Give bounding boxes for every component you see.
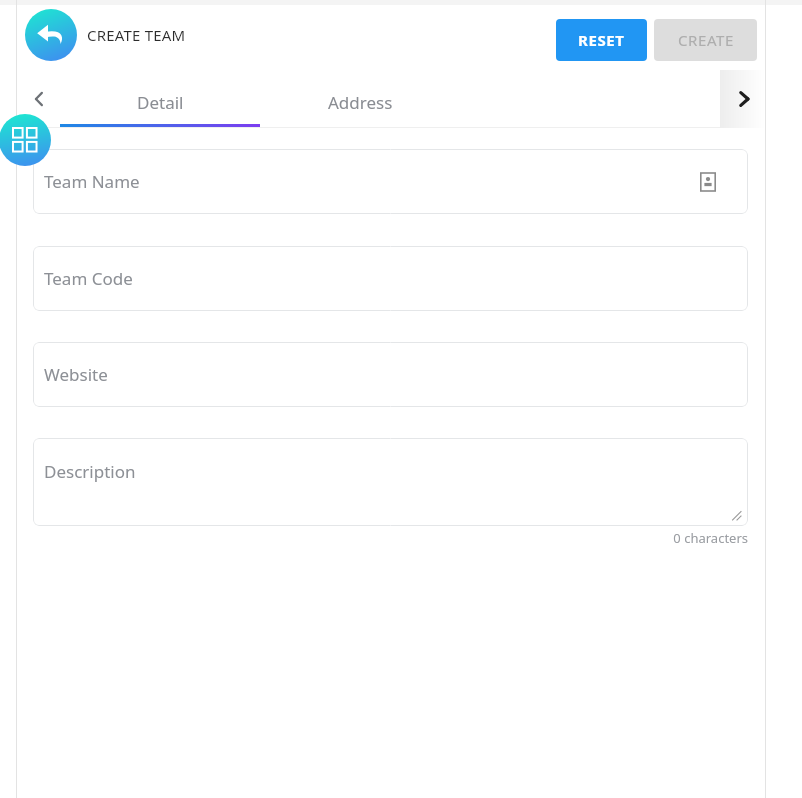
staticText: Team Name <box>44 170 140 193</box>
staticText: CREATE <box>678 30 734 50</box>
staticText: Team Code <box>44 267 133 290</box>
staticText: 0 characters <box>620 529 748 547</box>
button[interactable]: Address <box>260 80 460 125</box>
button[interactable]: Detail <box>60 80 260 125</box>
button[interactable]: Team Code <box>33 246 748 311</box>
button[interactable]: Next tab <box>722 70 765 128</box>
staticText: Description <box>44 460 136 483</box>
button[interactable]: Website <box>33 342 748 407</box>
staticText: CREATE TEAM <box>87 25 186 45</box>
button[interactable]: Team Name <box>33 149 748 214</box>
staticText: RESET <box>578 30 625 50</box>
button[interactable]: Back <box>25 9 77 61</box>
button[interactable]: Pick contact <box>696 170 720 194</box>
staticText: Detail <box>137 91 184 114</box>
button[interactable]: Description <box>33 438 748 526</box>
button[interactable]: Previous tab <box>22 82 56 116</box>
staticText: Website <box>44 363 108 386</box>
button[interactable]: CREATE <box>654 19 757 61</box>
staticText: Address <box>328 91 393 114</box>
button[interactable]: RESET <box>556 19 647 61</box>
button[interactable]: Menu grid <box>0 114 51 166</box>
